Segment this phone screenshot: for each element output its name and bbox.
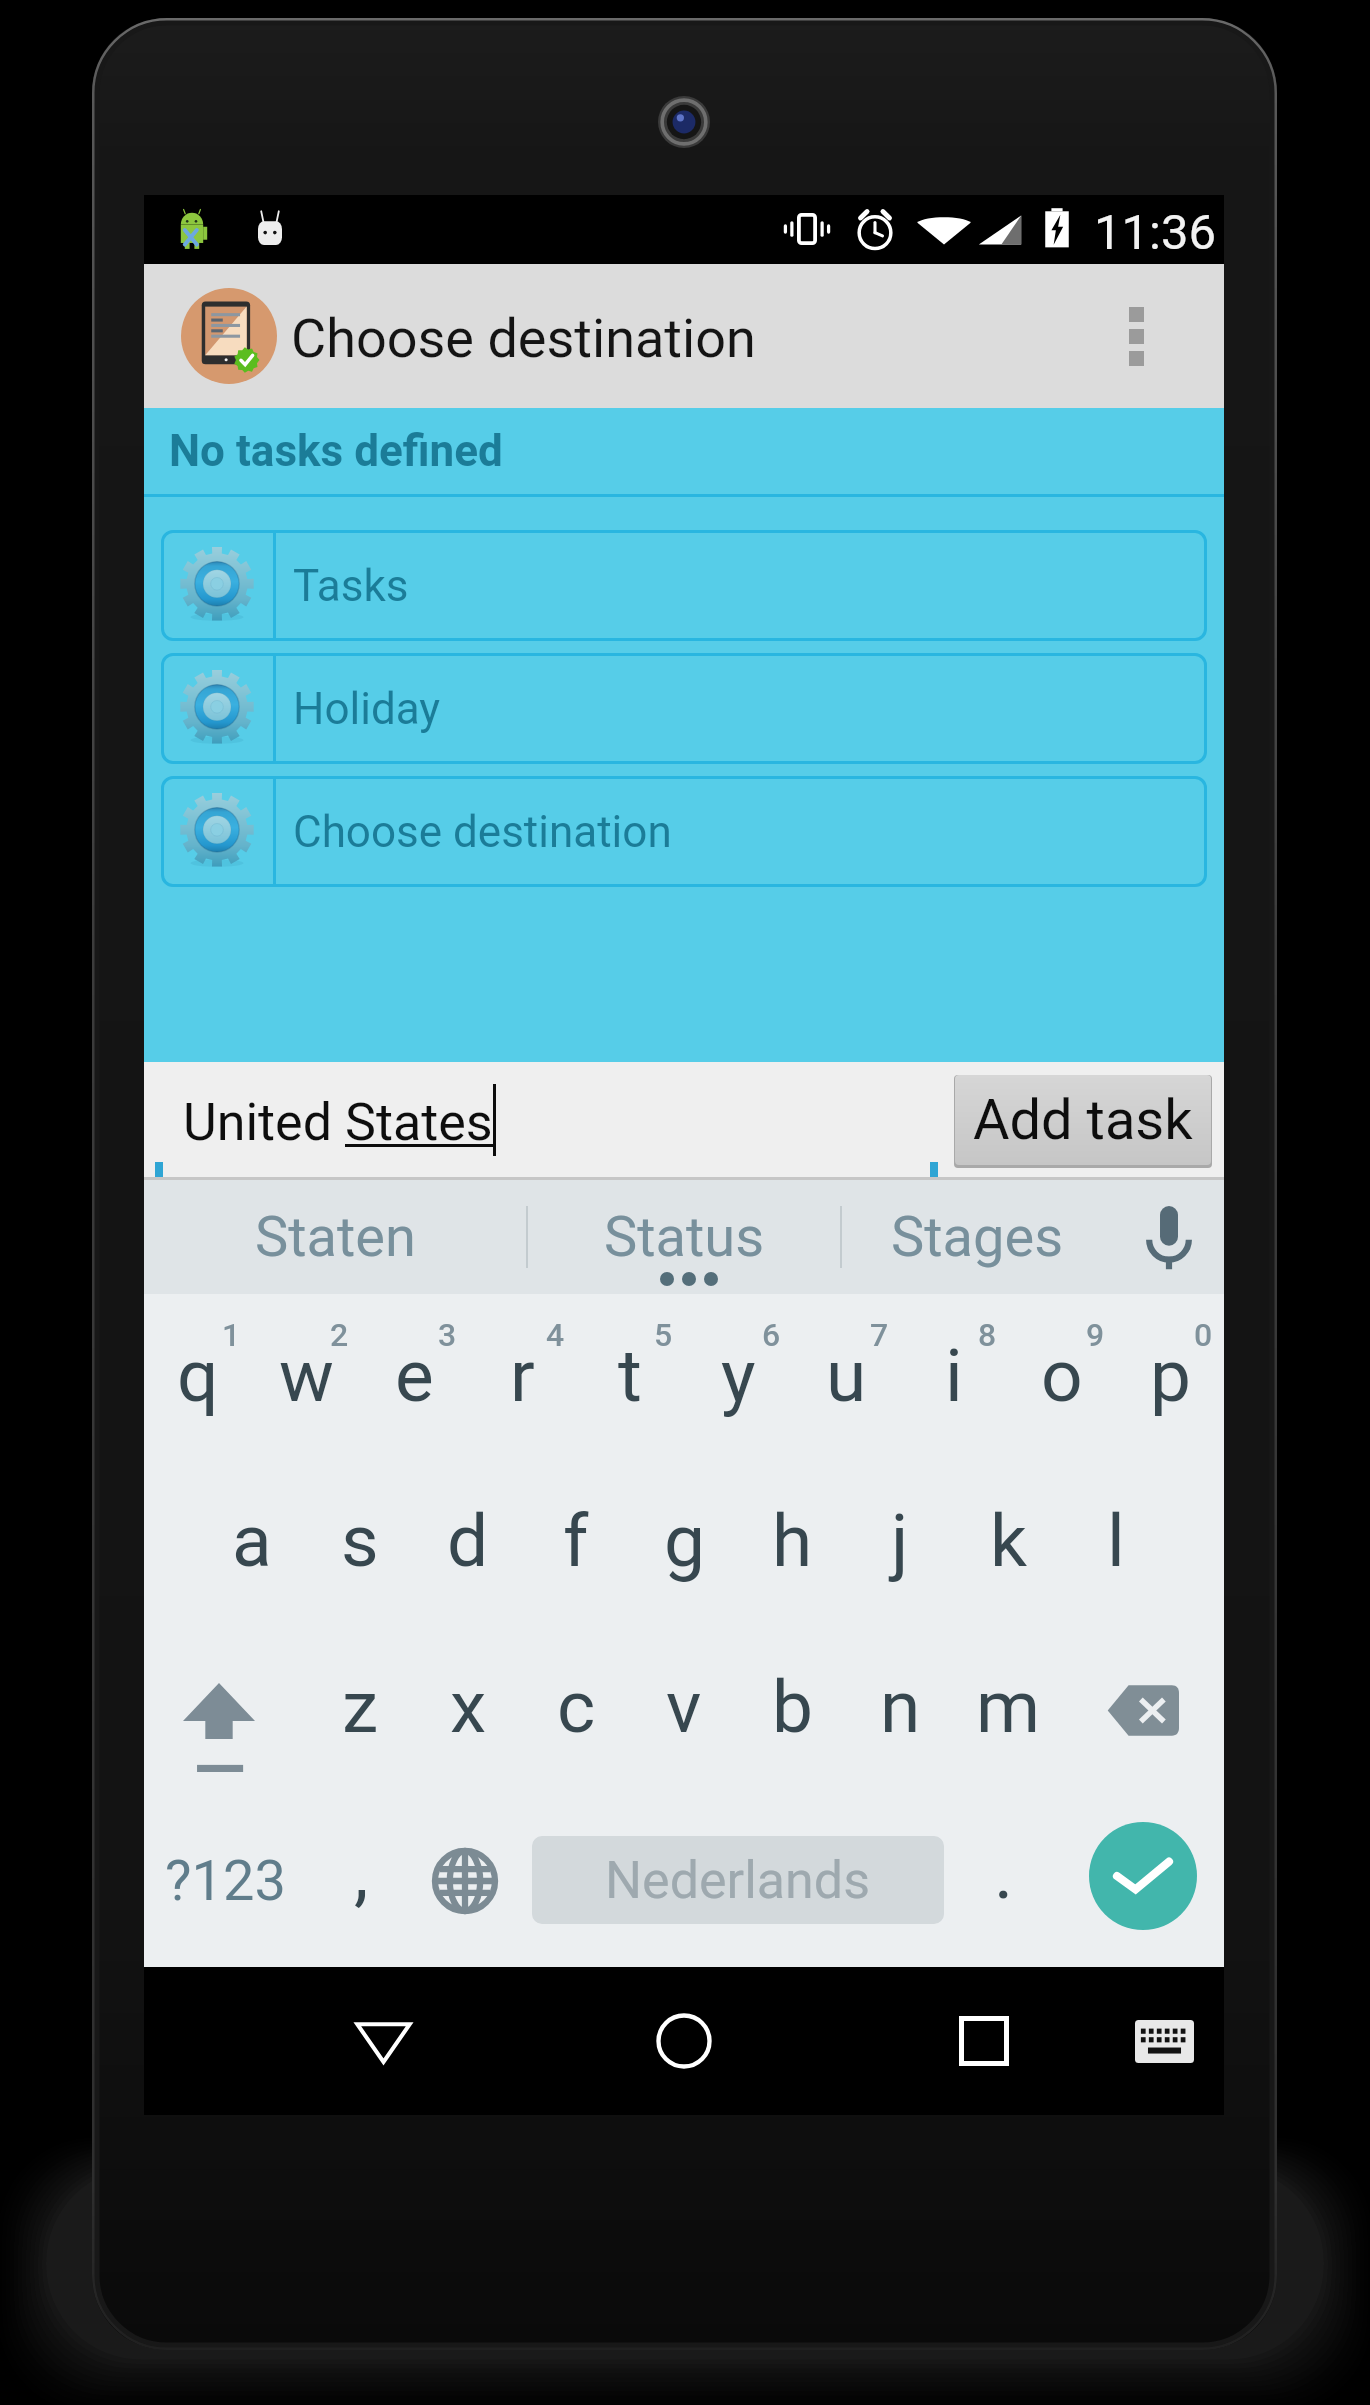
staticText: 8 bbox=[978, 1316, 997, 1354]
button[interactable]: Shift bbox=[144, 1628, 306, 1794]
staticText: Staten bbox=[255, 1204, 416, 1270]
staticText: i bbox=[945, 1333, 963, 1419]
button[interactable]: 1 bbox=[144, 1294, 252, 1462]
staticText: 6 bbox=[762, 1316, 781, 1354]
button[interactable]: Change language bbox=[416, 1794, 514, 1967]
button[interactable]: Voice input bbox=[1113, 1180, 1224, 1294]
button[interactable]: . bbox=[950, 1794, 1058, 1967]
button[interactable]: c bbox=[522, 1628, 630, 1794]
staticText: g bbox=[664, 1498, 705, 1584]
staticText: l bbox=[1107, 1498, 1125, 1584]
staticText: o bbox=[1041, 1333, 1083, 1419]
staticText: y bbox=[721, 1333, 756, 1419]
button[interactable]: , bbox=[306, 1794, 416, 1967]
button[interactable]: 4 bbox=[468, 1294, 576, 1462]
button[interactable]: More options bbox=[1086, 264, 1224, 408]
staticText: . bbox=[994, 1830, 1014, 1916]
button[interactable]: Backspace bbox=[1062, 1628, 1224, 1794]
staticText: 1 bbox=[222, 1316, 241, 1354]
staticText: Add task bbox=[973, 1087, 1193, 1153]
button[interactable]: l bbox=[1062, 1462, 1170, 1628]
button[interactable]: Home bbox=[604, 1967, 764, 2115]
staticText: f bbox=[563, 1498, 589, 1584]
staticText: 4 bbox=[546, 1316, 565, 1354]
staticText: d bbox=[447, 1498, 489, 1584]
button[interactable]: Switch keyboard bbox=[1094, 1967, 1234, 2115]
button[interactable]: f bbox=[522, 1462, 630, 1628]
button[interactable]: 2 bbox=[252, 1294, 360, 1462]
staticText: 11:36 bbox=[1094, 204, 1217, 261]
button[interactable]: Nederlands bbox=[532, 1836, 944, 1924]
staticText: e bbox=[395, 1333, 434, 1419]
staticText: c bbox=[557, 1664, 596, 1750]
button[interactable]: s bbox=[306, 1462, 414, 1628]
staticText: z bbox=[342, 1664, 379, 1750]
staticText: q bbox=[177, 1333, 219, 1419]
button[interactable]: Holiday bbox=[161, 653, 1207, 764]
button[interactable]: d bbox=[414, 1462, 522, 1628]
button[interactable]: ?123 bbox=[144, 1794, 306, 1967]
staticText: Tasks bbox=[293, 560, 409, 612]
button[interactable]: 8 bbox=[900, 1294, 1008, 1462]
staticText: x bbox=[450, 1664, 487, 1750]
staticText: b bbox=[772, 1664, 813, 1750]
button[interactable]: Status bbox=[527, 1180, 841, 1294]
staticText: 0 bbox=[1194, 1316, 1213, 1354]
staticText: p bbox=[1150, 1333, 1191, 1419]
staticText: 3 bbox=[438, 1316, 457, 1354]
staticText: w bbox=[279, 1333, 334, 1419]
button[interactable]: m bbox=[954, 1628, 1062, 1794]
button[interactable]: b bbox=[738, 1628, 846, 1794]
button[interactable]: 6 bbox=[684, 1294, 792, 1462]
button[interactable]: 9 bbox=[1008, 1294, 1116, 1462]
staticText: t bbox=[618, 1333, 642, 1419]
button[interactable]: Add task bbox=[955, 1075, 1211, 1165]
button[interactable]: Recents bbox=[904, 1967, 1064, 2115]
staticText: m bbox=[976, 1664, 1041, 1750]
button[interactable]: Back bbox=[303, 1967, 463, 2115]
staticText: Choose destination bbox=[293, 806, 672, 858]
button[interactable]: x bbox=[414, 1628, 522, 1794]
button[interactable]: Choose destination bbox=[161, 776, 1207, 887]
staticText: h bbox=[772, 1498, 813, 1584]
staticText: Choose destination bbox=[291, 307, 756, 370]
staticText: n bbox=[880, 1664, 921, 1750]
staticText: 7 bbox=[870, 1316, 889, 1354]
button[interactable]: Staten bbox=[144, 1180, 527, 1294]
staticText: No tasks defined bbox=[169, 425, 503, 477]
staticText: Status bbox=[604, 1204, 765, 1270]
button[interactable]: 7 bbox=[792, 1294, 900, 1462]
staticText: v bbox=[666, 1664, 702, 1750]
staticText: 5 bbox=[654, 1316, 673, 1354]
staticText: a bbox=[232, 1498, 272, 1584]
staticText: u bbox=[826, 1333, 867, 1419]
staticText: 9 bbox=[1086, 1316, 1105, 1354]
button[interactable]: g bbox=[630, 1462, 738, 1628]
button[interactable]: n bbox=[846, 1628, 954, 1794]
staticText: Stages bbox=[891, 1204, 1064, 1270]
staticText: ?123 bbox=[165, 1848, 286, 1914]
staticText: r bbox=[510, 1333, 535, 1419]
button[interactable]: z bbox=[306, 1628, 414, 1794]
button[interactable]: h bbox=[738, 1462, 846, 1628]
button[interactable]: 0 bbox=[1116, 1294, 1224, 1462]
button[interactable]: 5 bbox=[576, 1294, 684, 1462]
button[interactable]: k bbox=[954, 1462, 1062, 1628]
staticText: s bbox=[341, 1498, 379, 1584]
staticText: United bbox=[183, 1092, 345, 1153]
staticText: States bbox=[345, 1092, 493, 1153]
staticText: Holiday bbox=[293, 683, 441, 735]
staticText: Nederlands bbox=[605, 1850, 871, 1911]
button[interactable]: j bbox=[846, 1462, 954, 1628]
button[interactable]: 3 bbox=[360, 1294, 468, 1462]
staticText: 2 bbox=[330, 1316, 349, 1354]
button[interactable]: a bbox=[198, 1462, 306, 1628]
staticText: k bbox=[990, 1498, 1027, 1584]
button[interactable]: Stages bbox=[841, 1180, 1113, 1294]
staticText: j bbox=[891, 1498, 909, 1584]
staticText: , bbox=[354, 1830, 369, 1916]
button[interactable]: v bbox=[630, 1628, 738, 1794]
button[interactable]: Enter bbox=[1089, 1822, 1197, 1930]
button[interactable]: Tasks bbox=[161, 530, 1207, 641]
